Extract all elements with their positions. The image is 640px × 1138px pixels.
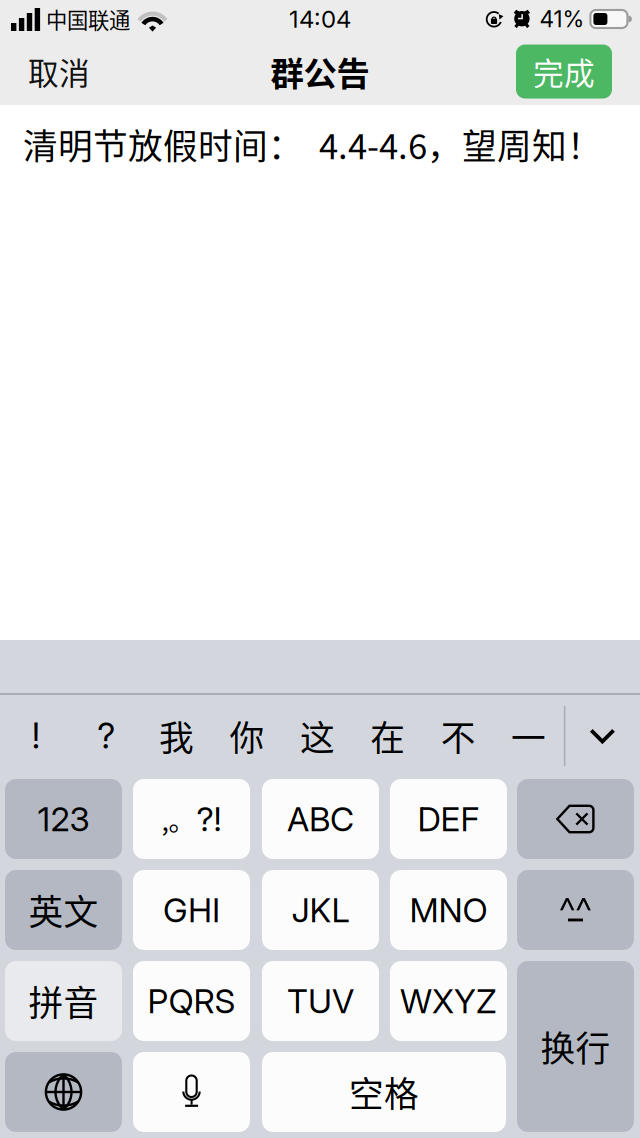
button[interactable]: DEF — [390, 779, 507, 859]
staticText: 不 — [441, 711, 476, 761]
button[interactable]: 空格 — [262, 1052, 506, 1132]
button[interactable]: Hide keyboard — [565, 695, 639, 777]
button[interactable]: ,。 — [133, 779, 250, 859]
staticText: 我 — [159, 711, 194, 761]
button[interactable]: 换行 — [517, 961, 634, 1132]
button[interactable]: GHI — [133, 870, 250, 950]
staticText: ? — [97, 715, 115, 757]
button[interactable]: WXYZ — [390, 961, 507, 1041]
staticText: 你 — [229, 711, 264, 761]
button[interactable]: TUV — [262, 961, 379, 1041]
button[interactable]: MNO — [390, 870, 507, 950]
button[interactable]: PQRS — [133, 961, 250, 1041]
button[interactable]: 不 — [423, 695, 493, 777]
button[interactable]: 英文 — [5, 870, 122, 950]
staticText: ABC — [287, 799, 354, 839]
staticText: 空格 — [349, 1067, 419, 1117]
button[interactable]: 我 — [141, 695, 212, 777]
button[interactable]: 完成 — [516, 44, 612, 98]
staticText: 41% — [539, 5, 584, 33]
button[interactable]: JKL — [262, 870, 379, 950]
staticText: GHI — [163, 890, 220, 930]
button[interactable]: Switch keyboard — [5, 1052, 122, 1132]
staticText: PQRS — [147, 981, 235, 1021]
staticText: 拼音 — [28, 976, 98, 1026]
staticText: ?! — [196, 799, 221, 839]
button[interactable]: 在 — [353, 695, 423, 777]
button[interactable]: Backspace — [517, 779, 634, 859]
button[interactable]: Dictation — [133, 1052, 250, 1132]
staticText: 中国联通 — [46, 4, 130, 34]
staticText: 这 — [300, 711, 335, 761]
staticText: TUV — [287, 981, 354, 1021]
button[interactable]: ? — [71, 695, 141, 777]
staticText: JKL — [291, 890, 349, 930]
staticText: WXYZ — [400, 981, 497, 1021]
staticText: 换行 — [540, 1021, 610, 1072]
staticText: 取消 — [28, 49, 90, 94]
button[interactable]: 一 — [493, 695, 564, 777]
button[interactable]: ! — [1, 695, 71, 777]
button[interactable]: 这 — [282, 695, 353, 777]
staticText: 123 — [37, 799, 89, 839]
staticText: 14:04 — [289, 4, 351, 33]
button[interactable]: 取消 — [0, 38, 118, 105]
staticText: DEF — [417, 799, 479, 839]
staticText: 完成 — [533, 49, 595, 94]
button[interactable]: 123 — [5, 779, 122, 859]
staticText: ! — [32, 715, 40, 757]
staticText: MNO — [409, 890, 487, 930]
staticText: 英文 — [28, 885, 98, 935]
staticText: 清明节放假时间： 4.4-4.6，望周知！ — [23, 119, 602, 169]
staticText: 在 — [370, 711, 405, 761]
button[interactable]: Emoticons — [517, 870, 634, 950]
staticText: ,。 — [161, 800, 195, 838]
staticText: 群公告 — [270, 47, 369, 96]
staticText: 一 — [511, 711, 546, 761]
button[interactable]: 你 — [212, 695, 282, 777]
button[interactable]: 拼音 — [5, 961, 122, 1041]
button[interactable]: ABC — [262, 779, 379, 859]
